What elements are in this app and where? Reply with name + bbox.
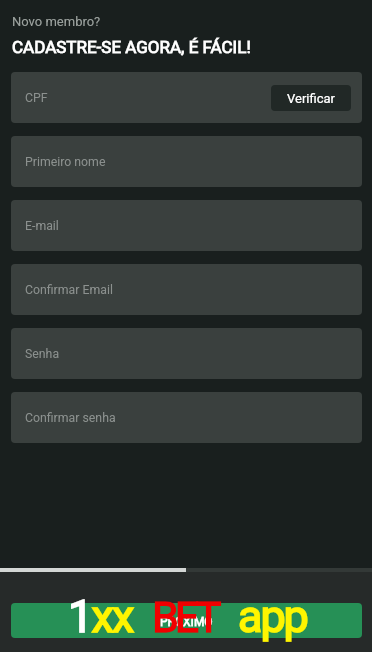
staticText: Verificar bbox=[287, 91, 335, 106]
button[interactable]: CPF bbox=[11, 72, 362, 123]
button[interactable]: Senha bbox=[11, 328, 362, 379]
staticText: Novo membro? bbox=[12, 14, 101, 29]
staticText: E-mail bbox=[25, 219, 59, 233]
staticText: CADASTRE-SE AGORA, É FÁCIL! bbox=[12, 37, 251, 57]
button[interactable]: Confirmar Email bbox=[11, 264, 362, 315]
button[interactable]: Primeiro nome bbox=[11, 136, 362, 187]
button[interactable]: PRÓXIMO bbox=[0, 598, 372, 646]
staticText: Confirmar senha bbox=[25, 411, 116, 425]
staticText: BET bbox=[152, 592, 218, 642]
staticText: 1xx bbox=[68, 590, 133, 643]
staticText: PRÓXIMO bbox=[160, 615, 213, 629]
button[interactable]: Verificar bbox=[271, 85, 351, 111]
button[interactable]: 1xBet app banner bbox=[11, 603, 362, 638]
staticText: Confirmar Email bbox=[25, 283, 113, 297]
staticText: Primeiro nome bbox=[25, 155, 106, 169]
staticText: Senha bbox=[25, 347, 60, 361]
button[interactable]: E-mail bbox=[11, 200, 362, 251]
staticText: CPF bbox=[25, 91, 48, 105]
button[interactable]: Confirmar senha bbox=[11, 392, 362, 443]
staticText: app bbox=[238, 590, 307, 643]
